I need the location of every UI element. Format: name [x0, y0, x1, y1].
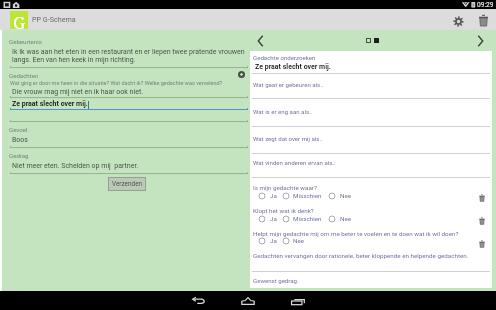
button[interactable]: [280, 235, 292, 247]
staticText: Gedrag: [9, 152, 29, 159]
button[interactable]: [326, 190, 338, 202]
button[interactable]: [326, 213, 338, 225]
button[interactable]: Delete answer: [476, 192, 488, 204]
button[interactable]: [256, 235, 268, 247]
staticText: Ze praat slecht over mij.: [255, 63, 331, 71]
button[interactable]: Verzenden: [108, 177, 146, 191]
staticText: Gedachten vervangen door rationele, bete…: [253, 252, 469, 259]
button[interactable]: Back: [185, 291, 212, 310]
staticText: Nee: [340, 192, 352, 199]
staticText: Gewenst gedrag.: [253, 277, 299, 284]
button[interactable]: Next page: [471, 32, 489, 50]
staticText: Helpt mijn gedachte mij om me beter te v…: [253, 230, 459, 237]
staticText: PP G-Schema: [32, 15, 76, 23]
staticText: Misschien: [293, 192, 322, 199]
button[interactable]: Recent apps: [284, 291, 311, 310]
button[interactable]: Delete: [476, 13, 490, 27]
staticText: Niet meer eten. Schelden op mij partner.: [12, 162, 139, 170]
staticText: Ik Ik was aan het eten in een restaurant…: [12, 48, 247, 64]
staticText: Gebeurtenis: [9, 38, 42, 45]
staticText: Ja: [270, 237, 277, 244]
button[interactable]: Add thought: [236, 69, 247, 80]
staticText: Nee: [340, 215, 352, 222]
staticText: Gedachte onderzoeken: [253, 54, 316, 61]
button[interactable]: [280, 213, 292, 225]
staticText: Gedachten: [9, 72, 39, 79]
button[interactable]: Previous page: [251, 32, 269, 50]
button[interactable]: [256, 213, 268, 225]
staticText: Wat is er eng aan als..: [253, 108, 313, 115]
staticText: Ja: [270, 215, 277, 222]
staticText: Wat ging er door me heen in die situatie…: [10, 80, 245, 86]
staticText: Ze praat slecht over mij.: [12, 100, 88, 108]
staticText: Boos: [12, 136, 28, 144]
button[interactable]: Settings: [452, 15, 464, 27]
staticText: Die vrouw mag mij niet en ik haar ook ni…: [12, 88, 144, 96]
staticText: Misschien: [293, 215, 322, 222]
staticText: Verzenden: [112, 180, 143, 188]
staticText: Wat gaat er gebeuren als..: [253, 81, 324, 88]
staticText: Wat vinden anderen ervan als..: [253, 159, 336, 166]
staticText: Ja: [270, 192, 277, 199]
staticText: G: [13, 11, 26, 29]
staticText: Wat zegt dat over mij als..: [253, 135, 323, 142]
button[interactable]: Home: [234, 291, 261, 310]
staticText: Klopt het wat ik denk?: [253, 207, 314, 214]
staticText: Is mijn gedachte waar?: [253, 184, 317, 191]
staticText: 09:29: [477, 1, 494, 9]
button[interactable]: Delete answer: [476, 215, 488, 227]
button[interactable]: [280, 190, 292, 202]
staticText: Nee: [293, 237, 305, 244]
button[interactable]: [256, 190, 268, 202]
button[interactable]: Delete answer: [476, 238, 488, 250]
staticText: Gevoel: [9, 126, 28, 133]
